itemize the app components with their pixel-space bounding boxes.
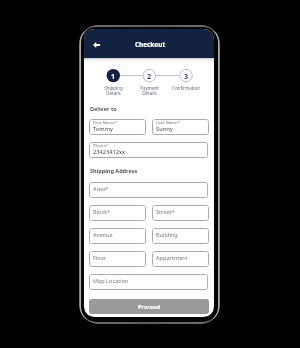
staticText: Checkout — [135, 40, 166, 49]
staticText: Floor — [93, 254, 107, 262]
staticText: Sunny — [156, 125, 173, 133]
button[interactable]: Block* — [89, 205, 146, 221]
button[interactable]: Building — [152, 228, 209, 244]
button[interactable]: Appartment — [152, 251, 209, 267]
staticText: Appartment — [156, 254, 188, 262]
staticText: Street* — [156, 208, 175, 216]
button[interactable]: Street* — [152, 205, 209, 221]
staticText: Area* — [93, 185, 109, 193]
staticText: Proceed — [138, 303, 161, 310]
staticText: 2 — [147, 71, 152, 81]
staticText: Deliver to — [90, 105, 117, 112]
staticText: 23423412xx — [93, 148, 126, 156]
staticText: First Name* — [93, 119, 118, 125]
staticText: Last Name* — [156, 119, 180, 125]
staticText: Payment Details — [140, 85, 159, 97]
button[interactable]: Floor — [89, 251, 146, 267]
button[interactable]: Back — [90, 38, 103, 51]
button[interactable]: Area* — [89, 182, 208, 198]
staticText: Avenue — [93, 231, 113, 239]
staticText: Shipping Details — [104, 85, 123, 97]
staticText: Confirmation — [172, 85, 200, 91]
staticText: 1 — [111, 71, 116, 81]
button[interactable]: Proceed — [89, 299, 209, 314]
staticText: Block* — [93, 208, 111, 216]
staticText: 3 — [184, 71, 189, 81]
staticText: Tommy — [93, 125, 114, 133]
button[interactable]: Phone* — [89, 142, 208, 158]
button[interactable]: Last Name* — [152, 119, 209, 135]
staticText: Building — [156, 231, 178, 239]
staticText: Map Location — [93, 277, 129, 285]
button[interactable]: Map Location — [89, 274, 208, 290]
button[interactable]: Avenue — [89, 228, 146, 244]
staticText: Phone* — [93, 142, 109, 148]
staticText: Shipping Address — [90, 167, 138, 174]
button[interactable]: First Name* — [89, 119, 146, 135]
